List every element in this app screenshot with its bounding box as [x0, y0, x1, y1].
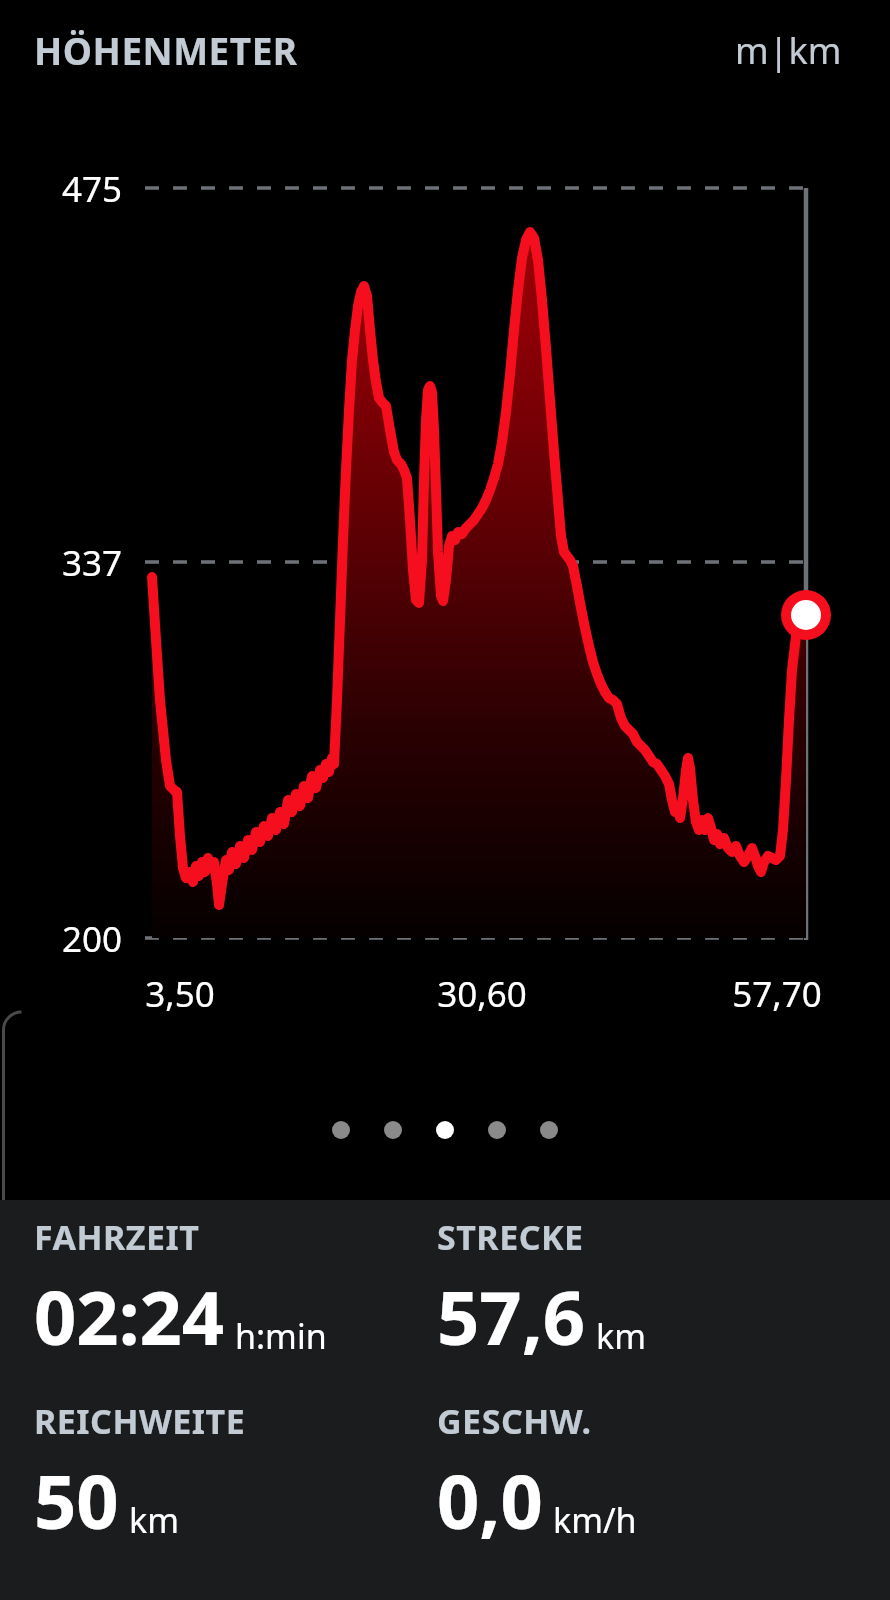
button[interactable]: Page 5 — [540, 1121, 558, 1139]
staticText: HÖHENMETER — [34, 25, 298, 75]
button[interactable]: Page 4 — [488, 1121, 506, 1139]
button[interactable]: STRECKE — [437, 1214, 890, 1367]
staticText: 02:24 — [34, 1266, 225, 1367]
button[interactable]: FAHRZEIT — [34, 1214, 437, 1367]
staticText: 57,70 — [717, 970, 837, 1018]
staticText: 3,50 — [120, 970, 240, 1018]
staticText: STRECKE — [437, 1214, 584, 1260]
staticText: 337 — [62, 539, 123, 587]
staticText: m|km — [735, 26, 842, 75]
staticText: 475 — [62, 165, 123, 213]
staticText: km/h — [553, 1497, 637, 1543]
button[interactable]: Page 2 — [384, 1121, 402, 1139]
staticText: 200 — [62, 915, 123, 963]
button[interactable]: Page 1 — [332, 1121, 350, 1139]
staticText: km — [596, 1313, 646, 1359]
staticText: 50 — [34, 1450, 119, 1551]
staticText: REICHWEITE — [34, 1398, 246, 1444]
staticText: GESCHW. — [437, 1398, 592, 1444]
staticText: km — [129, 1497, 179, 1543]
staticText: 0,0 — [437, 1450, 543, 1551]
staticText: FAHRZEIT — [34, 1214, 200, 1260]
button[interactable]: REICHWEITE — [34, 1398, 437, 1551]
button[interactable]: GESCHW. — [437, 1398, 890, 1551]
staticText: h:min — [235, 1313, 327, 1359]
button[interactable]: Page 3 — [436, 1121, 454, 1139]
staticText: 57,6 — [437, 1266, 586, 1367]
staticText: 30,60 — [422, 970, 542, 1018]
